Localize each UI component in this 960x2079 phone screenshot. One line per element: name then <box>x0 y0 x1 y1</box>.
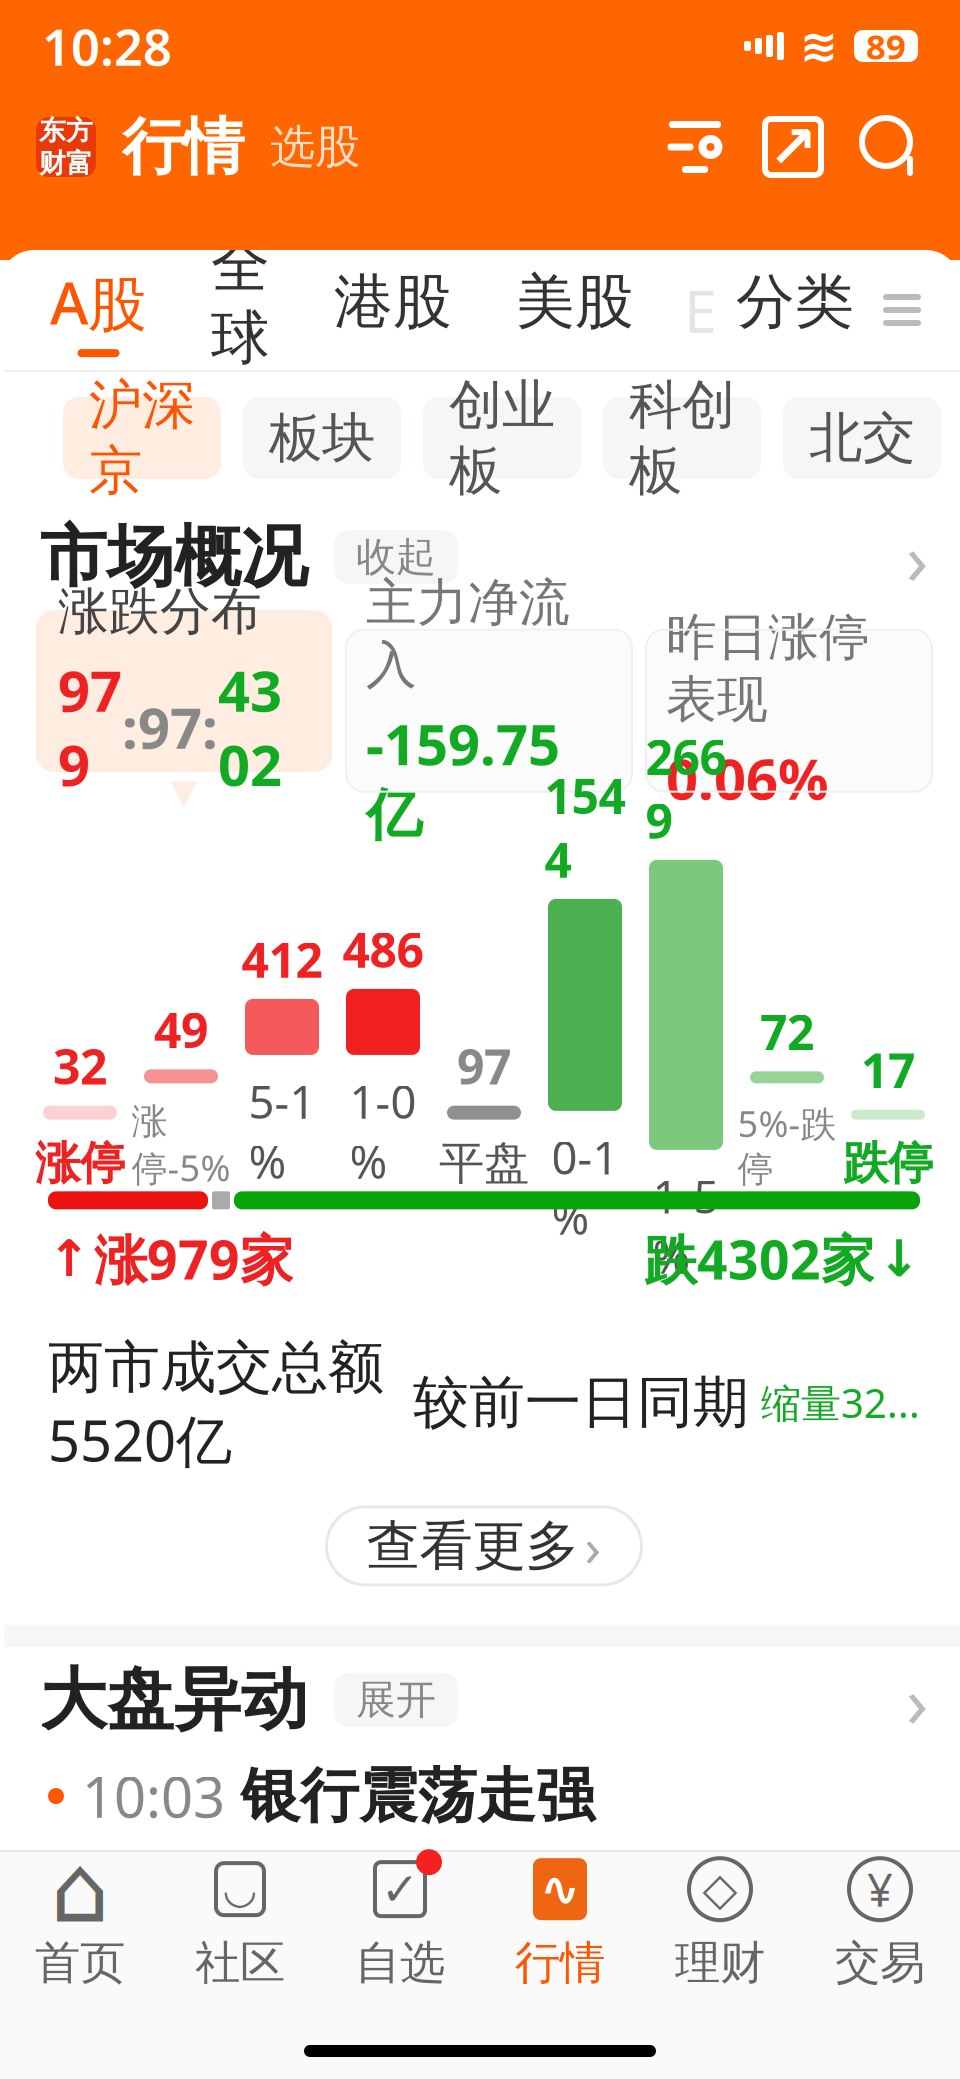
button[interactable]: 板块 <box>243 397 401 479</box>
staticText: ✓ <box>381 1863 419 1915</box>
staticText: 17 <box>861 1038 915 1102</box>
button[interactable]: 大盘异动 <box>4 1647 960 1753</box>
button[interactable]: A股 <box>40 263 157 357</box>
staticText: 10:03 <box>82 1759 225 1833</box>
staticText: 科创板 <box>629 372 735 503</box>
button[interactable]: 查看更多 <box>326 1507 641 1585</box>
button[interactable]: ⌂ <box>0 1857 160 1987</box>
staticText: 兴业... <box>521 1879 687 1957</box>
button[interactable]: 兴业... <box>493 1863 923 1973</box>
staticText: A股 <box>50 263 147 341</box>
staticText: 1.36% <box>718 1877 895 1959</box>
staticText: 5-1% <box>248 1071 315 1191</box>
staticText: ↑ <box>48 1230 90 1287</box>
staticText: 跌停 <box>843 1136 933 1191</box>
button[interactable]: 银行 <box>45 1863 475 1973</box>
button[interactable]: 创业板 <box>423 397 581 479</box>
staticText: 社区 <box>195 1935 285 1991</box>
staticText: ¥ <box>867 1859 893 1919</box>
staticText: › <box>906 509 928 605</box>
button[interactable]: 沪深京 <box>63 397 221 479</box>
button[interactable]: ∿ <box>480 1857 640 1987</box>
staticText: 2669 <box>645 724 726 852</box>
staticText: 首页 <box>35 1935 125 1991</box>
button[interactable]: ✓ <box>320 1857 480 1987</box>
staticText: 涨停-5% <box>131 1099 230 1191</box>
button[interactable]: 行情 <box>96 109 244 185</box>
staticText: 交易 <box>835 1935 925 1991</box>
staticText: 1-5% <box>652 1166 719 1286</box>
staticText: 美股 <box>516 266 634 338</box>
button[interactable]: 市场概况 <box>4 504 960 610</box>
staticText: 板块 <box>269 405 375 471</box>
staticText: 1-0% <box>349 1071 416 1191</box>
staticText: 97 <box>138 690 202 764</box>
staticText: 32 <box>53 1034 107 1098</box>
button[interactable]: 昨日涨停表现 <box>646 630 932 792</box>
staticText: 行情 <box>515 1935 605 1991</box>
staticText: 理财 <box>675 1935 765 1991</box>
staticText: 银行 <box>73 1882 191 1954</box>
button[interactable]: 港股 <box>324 266 462 354</box>
staticText: 大盘异动 <box>40 1659 308 1741</box>
staticText: ∿ <box>540 1862 580 1916</box>
button[interactable]: 东方财富 <box>36 117 96 177</box>
button[interactable]: ◡ <box>160 1857 320 1987</box>
staticText: 分类 <box>736 266 854 338</box>
staticText: ↓ <box>878 1230 920 1287</box>
staticText: › <box>906 1652 928 1748</box>
button[interactable]: 主力净流入 <box>346 630 632 792</box>
button[interactable]: 更多分类 <box>854 282 928 338</box>
staticText: ◡ <box>224 1866 255 1912</box>
staticText: : <box>202 690 218 764</box>
staticText: 缩量32... <box>761 1376 920 1429</box>
staticText: 全球 <box>211 230 270 374</box>
staticText: ▼ <box>170 772 197 811</box>
staticText: 1544 <box>544 763 625 891</box>
staticText: 89 <box>866 23 906 69</box>
button[interactable]: ◇ <box>640 1857 800 1987</box>
staticText: ≋ <box>800 20 838 72</box>
button[interactable]: 选股 <box>244 119 360 175</box>
staticText: 10:28 <box>42 12 172 80</box>
staticText: 979 <box>58 653 122 801</box>
button[interactable]: 全球 <box>201 230 280 390</box>
staticText: E <box>684 271 717 349</box>
staticText: 沪深京 <box>89 372 195 503</box>
staticText: 97 <box>457 1034 511 1098</box>
staticText: 0-1% <box>551 1127 618 1247</box>
button[interactable]: 美股 <box>506 266 644 354</box>
staticText: 较前一日同期 <box>413 1368 749 1437</box>
staticText: 自选 <box>355 1935 445 1991</box>
staticText: 市场概况 <box>40 516 308 598</box>
button[interactable]: 涨跌分布 <box>36 610 332 811</box>
staticText: 0.30% <box>270 1877 447 1959</box>
button[interactable]: 分类 <box>736 266 854 354</box>
staticText: 4302 <box>218 653 282 801</box>
staticText: › <box>584 1510 601 1581</box>
staticText: 平盘 <box>439 1136 529 1191</box>
staticText: 银行震荡走强 <box>241 1760 595 1832</box>
staticText: 查看更多 <box>366 1513 578 1579</box>
staticText: 选股 <box>270 119 360 175</box>
staticText: 涨跌分布 <box>58 580 262 643</box>
button[interactable]: 分享 <box>726 116 824 178</box>
staticText: 展开 <box>356 1675 436 1724</box>
staticText: 昨日涨停表现 <box>666 606 870 731</box>
staticText: 49 <box>154 998 208 1061</box>
button[interactable]: 自定义 <box>664 116 726 178</box>
staticText: -159.75亿 <box>366 706 560 849</box>
staticText: 72 <box>760 1000 814 1063</box>
staticText: 收起 <box>356 532 436 581</box>
staticText: 北交 <box>809 405 915 471</box>
button[interactable]: 科创板 <box>603 397 761 479</box>
button[interactable]: 搜索 <box>824 114 924 180</box>
staticText: 东方 <box>39 114 93 147</box>
button[interactable]: 北交 <box>783 397 941 479</box>
staticText: 412 <box>241 927 322 991</box>
staticText: 港股 <box>334 266 452 338</box>
staticText: 跌4302家 <box>644 1223 874 1294</box>
staticText: 涨979家 <box>94 1223 293 1294</box>
button[interactable]: ¥ <box>800 1857 960 1987</box>
staticText: : <box>122 690 138 764</box>
